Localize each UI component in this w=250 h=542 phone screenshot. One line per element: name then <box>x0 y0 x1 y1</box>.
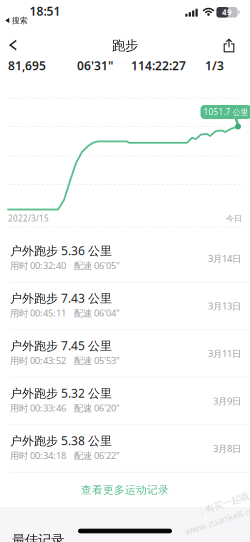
staticText: 1051.7 公里 <box>203 107 248 117</box>
button[interactable]: 户外跑步 5.36 公里 <box>0 235 250 282</box>
staticText: 户外跑步 5.36 公里 <box>10 242 112 258</box>
staticText: 用时 00:33:46 配速 06'20" <box>10 402 120 414</box>
staticText: 3月11日 <box>208 347 241 360</box>
staticText: 18:51 <box>29 3 60 19</box>
button[interactable]: 户外跑步 5.38 公里 <box>0 425 250 472</box>
staticText: 3月9日 <box>213 395 241 407</box>
staticText: 2022/3/15 <box>8 213 49 224</box>
staticText: 3月14日 <box>208 252 241 265</box>
staticText: 06'31" <box>77 57 113 73</box>
staticText: 今日 <box>226 214 242 223</box>
staticText: 114:22:27 <box>131 57 186 73</box>
staticText: 1/3 <box>205 57 224 73</box>
staticText: ，有买一起哦！ <box>195 497 250 509</box>
staticText: 用时 00:34:18 配速 06'22" <box>10 449 120 462</box>
button[interactable]: 查看更多运动记录 <box>0 473 250 507</box>
staticText: 户外跑步 7.45 公里 <box>10 337 112 353</box>
staticText: 搜索 <box>12 16 28 25</box>
staticText: 用时 00:45:11 配速 06'04" <box>10 307 120 319</box>
staticText: 3月13日 <box>208 300 241 312</box>
button[interactable] <box>223 38 234 52</box>
staticText: 户外跑步 5.32 公里 <box>10 385 112 401</box>
staticText: 49 <box>222 7 232 17</box>
staticText: 户外跑步 7.43 公里 <box>10 290 112 306</box>
staticText: 户外跑步 5.38 公里 <box>10 432 112 448</box>
staticText: 81,695 <box>8 57 46 73</box>
button[interactable]: 户外跑步 7.43 公里 <box>0 282 250 330</box>
button[interactable]: 户外跑步 5.32 公里 <box>0 377 250 425</box>
staticText: 用时 00:32:40 配速 06'05" <box>10 259 120 272</box>
button[interactable] <box>9 39 19 51</box>
staticText: www.zuanke8.com <box>183 513 250 525</box>
staticText: 最佳记录 <box>12 532 64 542</box>
staticText: 查看更多运动记录 <box>81 483 169 496</box>
button[interactable]: 户外跑步 7.45 公里 <box>0 330 250 377</box>
staticText: 3月8日 <box>213 442 241 455</box>
staticText: 跑步 <box>112 37 138 54</box>
staticText: 用时 00:43:52 配速 05'53" <box>10 354 120 367</box>
